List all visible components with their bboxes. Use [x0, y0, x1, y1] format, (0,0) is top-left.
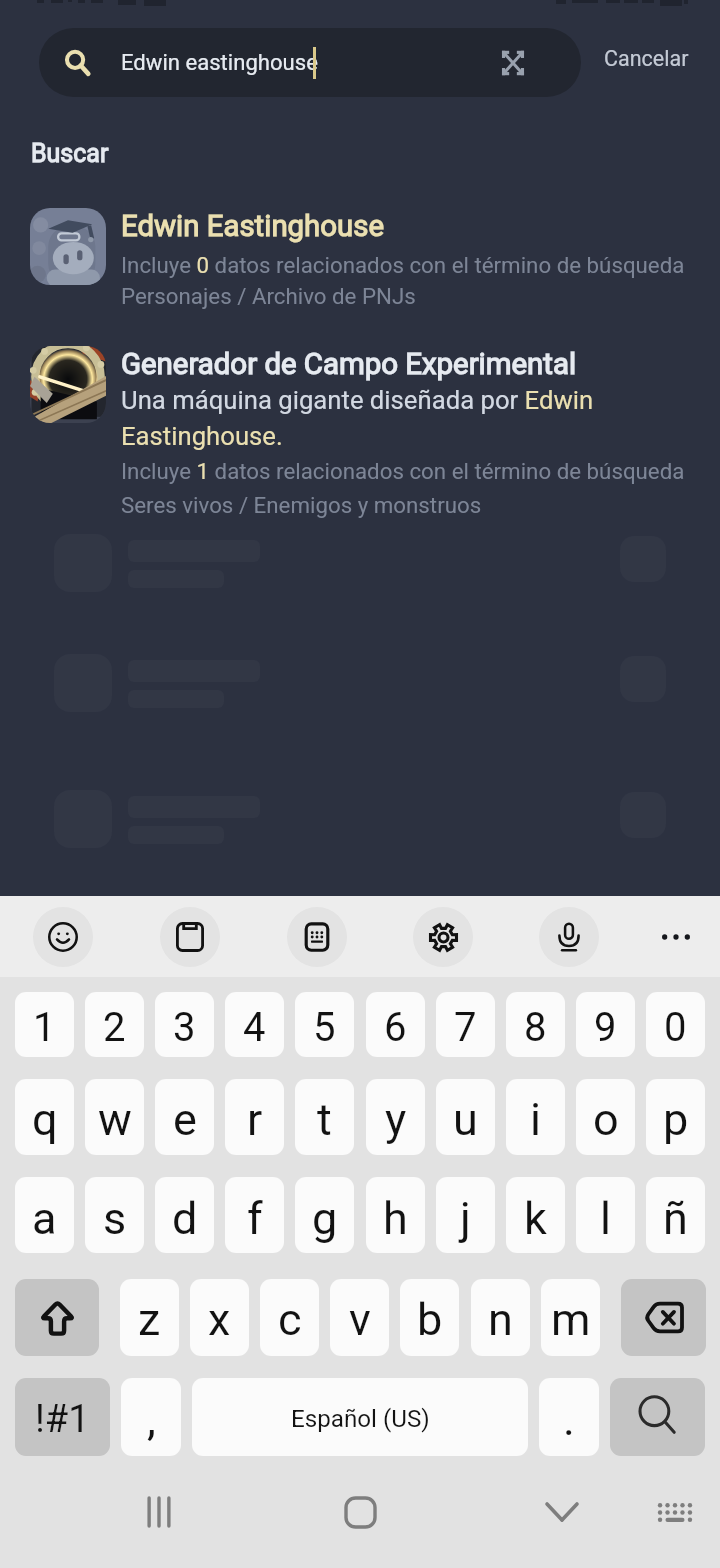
button[interactable]: x [190, 1279, 249, 1356]
staticText: ñ [663, 1192, 688, 1245]
button[interactable]: Mayúsculas [15, 1279, 99, 1356]
staticText: c [278, 1293, 302, 1346]
button[interactable]: q [15, 1079, 74, 1155]
staticText: 6 [384, 1004, 407, 1051]
button[interactable]: g [295, 1177, 354, 1253]
staticText: 3 [173, 1004, 196, 1051]
button[interactable]: Retroceso [621, 1279, 706, 1356]
staticText: y [385, 1093, 407, 1146]
button[interactable]: a [15, 1177, 74, 1253]
button[interactable]: Ajustes [413, 907, 473, 967]
staticText: Edwin Eastinghouse [121, 209, 385, 243]
staticText: e [173, 1093, 197, 1146]
button[interactable]: i [506, 1079, 565, 1155]
button[interactable]: 3 [155, 992, 214, 1057]
button[interactable]: o [576, 1079, 635, 1155]
staticText: j [460, 1192, 471, 1245]
button[interactable]: Buscar [610, 1378, 705, 1456]
staticText: Generador de Campo Experimental [121, 347, 577, 381]
button[interactable]: Recientes [129, 1491, 189, 1533]
button[interactable]: 4 [225, 992, 284, 1057]
staticText: m [551, 1293, 591, 1346]
staticText: 7 [454, 1004, 477, 1051]
button[interactable]: , [121, 1378, 181, 1456]
button[interactable]: Más opciones [646, 907, 706, 967]
button[interactable]: h [366, 1177, 425, 1253]
button[interactable]: Voz [539, 907, 599, 967]
button[interactable]: t [295, 1079, 354, 1155]
staticText: l [600, 1192, 611, 1245]
staticText: Incluye 0 datos relacionados con el térm… [121, 252, 685, 278]
button[interactable]: p [646, 1079, 705, 1155]
staticText: g [312, 1192, 338, 1245]
staticText: !#1 [35, 1397, 90, 1442]
staticText: u [453, 1093, 478, 1146]
button[interactable]: Cambiar teclado [645, 1491, 705, 1533]
staticText: d [172, 1192, 198, 1245]
button[interactable]: Atrás [532, 1491, 592, 1533]
button[interactable]: Edwin Eastinghouse [0, 200, 720, 310]
staticText: Cancelar [604, 46, 689, 71]
button[interactable]: c [260, 1279, 319, 1356]
button[interactable]: Generador de Campo Experimental [0, 336, 720, 526]
button[interactable]: . [539, 1378, 599, 1456]
button[interactable]: s [85, 1177, 144, 1253]
button[interactable]: Teclado numérico [287, 907, 347, 967]
button[interactable]: n [471, 1279, 530, 1356]
button[interactable]: z [120, 1279, 179, 1356]
button[interactable]: 0 [646, 992, 705, 1057]
button[interactable]: Cancelar [604, 46, 689, 71]
staticText: o [593, 1093, 619, 1146]
button[interactable]: 5 [295, 992, 354, 1057]
button[interactable]: m [541, 1279, 600, 1356]
staticText: 4 [243, 1004, 266, 1051]
button[interactable]: w [85, 1079, 144, 1155]
button[interactable]: e [155, 1079, 214, 1155]
button[interactable]: r [225, 1079, 284, 1155]
button[interactable]: 2 [85, 992, 144, 1057]
staticText: w [98, 1093, 132, 1146]
button[interactable]: y [366, 1079, 425, 1155]
staticText: Incluye 1 datos relacionados con el térm… [121, 458, 685, 484]
button[interactable]: k [506, 1177, 565, 1253]
button[interactable]: Inicio [330, 1491, 390, 1533]
staticText: , [147, 1393, 156, 1446]
button[interactable]: 9 [576, 992, 635, 1057]
staticText: 2 [103, 1004, 126, 1051]
staticText: k [524, 1192, 547, 1245]
button[interactable]: 8 [506, 992, 565, 1057]
button[interactable]: v [330, 1279, 389, 1356]
button[interactable]: Expandir [488, 36, 538, 90]
button[interactable]: f [225, 1177, 284, 1253]
staticText: a [32, 1192, 57, 1245]
staticText: Español (US) [291, 1405, 430, 1433]
staticText: Buscar [31, 139, 109, 168]
button[interactable]: 7 [436, 992, 495, 1057]
staticText: Personajes / Archivo de PNJs [121, 283, 416, 309]
staticText: b [417, 1293, 443, 1346]
button[interactable]: u [436, 1079, 495, 1155]
staticText: v [349, 1293, 371, 1346]
button[interactable]: l [576, 1177, 635, 1253]
button[interactable]: Edwin eastinghouse [39, 28, 581, 97]
staticText: q [32, 1093, 58, 1146]
staticText: . [563, 1393, 575, 1446]
staticText: 0 [664, 1004, 687, 1051]
staticText: 1 [33, 1004, 56, 1051]
button[interactable]: Español (US) [192, 1378, 528, 1456]
staticText: s [103, 1192, 127, 1245]
button[interactable]: !#1 [15, 1378, 110, 1456]
button[interactable]: Portapapeles [160, 907, 220, 967]
staticText: 9 [594, 1004, 617, 1051]
button[interactable]: j [436, 1177, 495, 1253]
button[interactable]: b [400, 1279, 459, 1356]
staticText: Seres vivos / Enemigos y monstruos [121, 492, 482, 518]
button[interactable]: 1 [15, 992, 74, 1057]
button[interactable]: d [155, 1177, 214, 1253]
button[interactable]: 6 [366, 992, 425, 1057]
staticText: r [247, 1093, 263, 1146]
staticText: x [208, 1293, 231, 1346]
staticText: h [383, 1192, 408, 1245]
button[interactable]: Emoji [33, 907, 93, 967]
button[interactable]: ñ [646, 1177, 705, 1253]
